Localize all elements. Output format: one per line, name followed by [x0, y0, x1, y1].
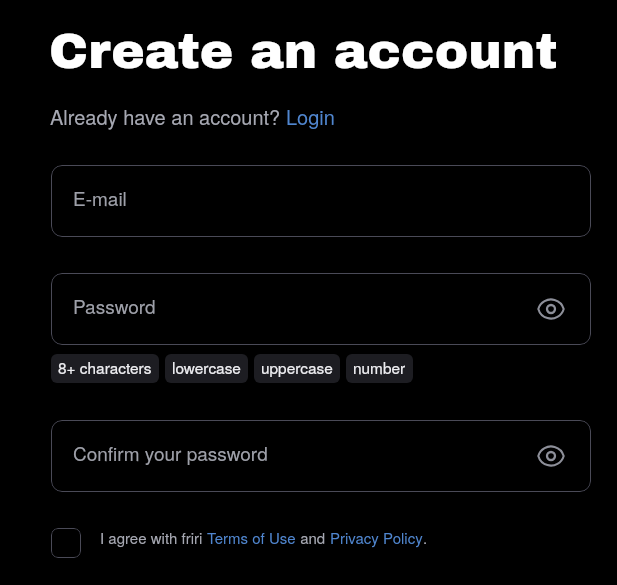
staticText: 8+ characters [58, 356, 152, 378]
button[interactable]: Privacy Policy [330, 527, 423, 548]
staticText: number [353, 356, 406, 378]
button[interactable]: uppercase [254, 354, 340, 383]
staticText: I agree with friri [100, 527, 207, 548]
staticText: . [423, 527, 428, 548]
staticText: Terms of Use [207, 527, 296, 548]
button[interactable]: Password [51, 273, 591, 345]
staticText: Password [73, 292, 156, 319]
button[interactable]: Terms of Use [207, 527, 296, 548]
staticText: Login [286, 102, 335, 131]
button[interactable]: 8+ characters [51, 354, 159, 383]
button[interactable]: Show password [537, 295, 565, 323]
staticText: and [296, 527, 330, 548]
staticText: Already have an account? [50, 102, 286, 131]
button[interactable]: Show password [537, 442, 565, 470]
button[interactable]: lowercase [165, 354, 248, 383]
button[interactable]: E-mail [51, 165, 591, 237]
staticText: Privacy Policy [330, 527, 423, 548]
button[interactable]: number [346, 354, 413, 383]
button[interactable]: Login [286, 102, 335, 131]
button[interactable]: I agree checkbox [51, 528, 81, 558]
staticText: Confirm your password [73, 439, 268, 466]
staticText: lowercase [172, 356, 241, 378]
staticText: E-mail [73, 184, 127, 211]
staticText: Create an account [49, 24, 558, 79]
button[interactable]: Confirm your password [51, 420, 591, 492]
staticText: uppercase [261, 356, 333, 378]
